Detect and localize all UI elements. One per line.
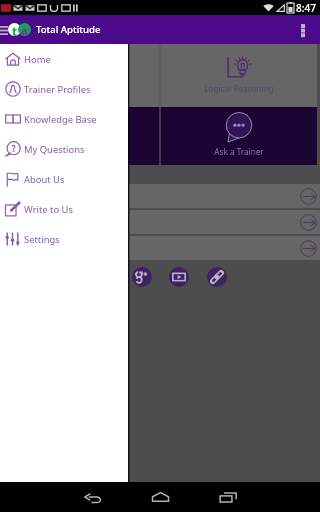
button[interactable]: Settings bbox=[0, 224, 128, 254]
staticText: Ask a Trainer bbox=[214, 146, 264, 157]
staticText: Knowledge Base bbox=[24, 113, 97, 126]
staticText: Write to Us bbox=[24, 203, 73, 216]
staticText: 8:47 bbox=[296, 1, 316, 15]
staticText: t bbox=[12, 23, 18, 36]
button[interactable] bbox=[0, 184, 320, 208]
button[interactable]: Google Plus bbox=[132, 267, 152, 287]
staticText: a bbox=[21, 23, 28, 36]
button[interactable]: Website link bbox=[207, 267, 227, 287]
staticText: Verbal bbox=[68, 146, 93, 157]
staticText: Logical Reasoning bbox=[204, 83, 274, 94]
button[interactable]: Aptitude bbox=[0, 44, 159, 107]
button[interactable]: Knowledge Base bbox=[0, 104, 128, 134]
button[interactable]: About Us bbox=[0, 164, 128, 194]
button[interactable]: Home bbox=[140, 482, 180, 512]
staticText: Settings bbox=[24, 233, 60, 246]
staticText: My Questions bbox=[24, 143, 85, 156]
button[interactable]: Open navigation drawer bbox=[0, 20, 12, 40]
staticText: About Us bbox=[24, 173, 65, 186]
button[interactable]: Trainer Profiles bbox=[0, 74, 128, 104]
button[interactable]: My Questions bbox=[0, 134, 128, 164]
button[interactable] bbox=[0, 236, 320, 260]
button[interactable]: More options bbox=[292, 19, 314, 41]
staticText: Aptitude bbox=[63, 83, 97, 94]
button[interactable]: Recent apps bbox=[208, 482, 248, 512]
button[interactable]: Back bbox=[72, 482, 112, 512]
staticText: Trainer Profiles bbox=[24, 83, 91, 96]
button[interactable]: Verbal bbox=[0, 107, 159, 165]
button[interactable] bbox=[0, 210, 320, 234]
button[interactable]: YouTube bbox=[169, 267, 189, 287]
button[interactable]: Ask a Trainer bbox=[161, 107, 317, 165]
staticText: Home bbox=[24, 53, 51, 66]
button[interactable]: Home bbox=[0, 44, 128, 74]
button[interactable]: Write to Us bbox=[0, 194, 128, 224]
button[interactable]: Logical Reasoning bbox=[161, 44, 317, 107]
staticText: Total Aptitude bbox=[36, 23, 101, 36]
